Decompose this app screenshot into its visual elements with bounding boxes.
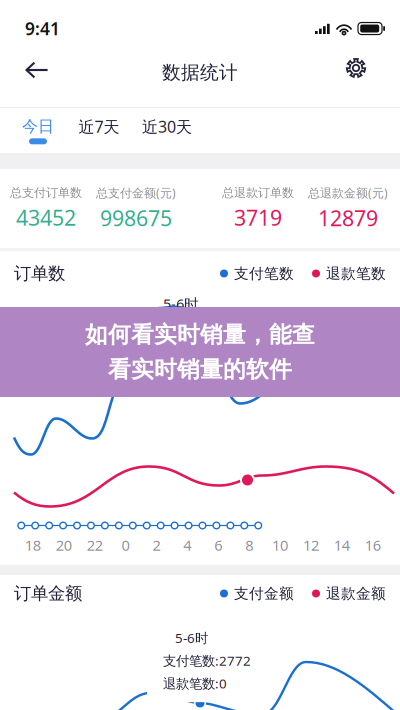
staticText: 6 [214,535,222,555]
button[interactable]: 今日 [9,108,67,153]
staticText: 数据统计 [162,61,238,84]
staticText: 近7天 [78,116,119,137]
staticText: 20 [56,535,72,555]
staticText: 总退款订单数 [222,185,294,200]
staticText: 5-6时 [163,294,199,313]
staticText: 18 [25,535,41,555]
staticText: 支付金额 [234,584,294,602]
button[interactable]: Back [15,46,59,90]
staticText: 5-6时 [175,629,208,647]
staticText: 近30天 [142,116,192,137]
staticText: 10 [272,535,288,555]
staticText: 16 [365,535,381,555]
staticText: 如何看实时销量，能查 [85,321,315,348]
staticText: 14 [334,535,350,555]
staticText: 12879 [318,204,378,232]
staticText: 退款笔数:0 [163,674,227,692]
staticText: 看实时销量的软件 [108,355,292,383]
staticText: 总支付订单数 [10,185,82,200]
staticText: 支付笔数:2772 [163,652,251,669]
staticText: 43452 [16,203,76,231]
staticText: 今日 [22,117,54,136]
staticText: 0 [121,535,129,555]
staticText: 订单金额 [14,583,82,604]
staticText: 9:41 [25,17,60,40]
staticText: 8 [245,535,253,555]
staticText: 12 [303,535,319,555]
staticText: 998675 [100,204,172,232]
staticText: 总支付金额(元) [96,185,176,201]
button[interactable]: 近7天 [67,108,131,153]
staticText: 22 [87,535,103,555]
staticText: 4 [183,535,191,555]
button[interactable]: 近30天 [131,108,203,153]
staticText: 3719 [234,203,282,231]
staticText: 支付笔数 [234,264,294,282]
staticText: 退款笔数 [326,264,386,282]
staticText: 2 [152,535,160,555]
button[interactable]: Settings [334,46,378,90]
staticText: 退款金额 [326,584,386,602]
staticText: 总退款金额(元) [308,185,388,201]
staticText: 订单数 [14,263,65,284]
